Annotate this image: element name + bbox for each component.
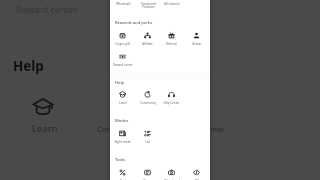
button[interactable]: Modes xyxy=(115,118,129,124)
staticText: Affiliate xyxy=(142,42,153,46)
button[interactable]: List xyxy=(135,130,160,144)
button[interactable]: Help center xyxy=(184,124,225,134)
button[interactable]: Wholesale xyxy=(116,2,131,6)
button[interactable]: All channel xyxy=(163,2,181,6)
staticText: Community xyxy=(140,101,156,105)
button[interactable]: Help xyxy=(115,80,125,86)
staticText: Structured Products xyxy=(141,2,156,9)
staticText: Whiteboard xyxy=(164,179,180,180)
button[interactable]: Reward center xyxy=(110,53,135,67)
staticText: All channel xyxy=(164,2,180,6)
staticText: Rewards and perks xyxy=(115,20,153,26)
button[interactable]: Learn xyxy=(32,122,58,135)
button[interactable]: Help xyxy=(13,57,44,75)
staticText: Help Center xyxy=(163,101,180,105)
staticText: API xyxy=(194,179,199,180)
button[interactable]: Whiteboard xyxy=(159,169,184,180)
staticText: Learn xyxy=(119,101,127,105)
button[interactable]: Community xyxy=(97,124,139,134)
button[interactable]: Crypto gift xyxy=(110,32,135,46)
button[interactable]: Learn xyxy=(32,98,54,116)
staticText: Night mode xyxy=(114,140,131,144)
staticText: List xyxy=(145,140,150,144)
staticText: Help xyxy=(115,80,125,86)
button[interactable]: Community xyxy=(135,91,160,105)
staticText: Pool xyxy=(120,179,126,180)
button[interactable]: Demo xyxy=(135,169,160,180)
button[interactable]: Affiliate xyxy=(135,32,160,46)
staticText: Broker xyxy=(192,42,202,46)
staticText: Demo xyxy=(143,179,152,180)
button[interactable]: Broker xyxy=(184,32,209,46)
button[interactable]: Reward center xyxy=(16,3,78,15)
staticText: Reward center xyxy=(113,63,133,67)
staticText: Wholesale xyxy=(116,2,131,6)
staticText: Modes xyxy=(115,118,129,124)
button[interactable]: Rewards and perks xyxy=(115,20,153,26)
button[interactable]: Pool xyxy=(110,169,135,180)
button[interactable]: Help Center xyxy=(159,91,184,105)
button[interactable]: Structured Products xyxy=(141,2,156,9)
staticText: Tools xyxy=(115,157,126,163)
button[interactable]: Learn xyxy=(110,91,135,105)
staticText: Crypto gift xyxy=(115,42,130,46)
button[interactable]: Tools xyxy=(115,157,126,163)
button[interactable]: Night mode xyxy=(110,130,135,144)
staticText: Referral xyxy=(166,42,177,46)
button[interactable]: Referral xyxy=(159,32,184,46)
button[interactable]: API xyxy=(184,169,209,180)
